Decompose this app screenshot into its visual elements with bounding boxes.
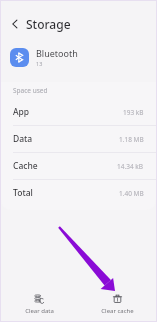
- button[interactable]: Bluetooth: [1, 43, 156, 71]
- staticText: Clear data: [25, 307, 54, 315]
- staticText: 1.18 MB: [119, 135, 144, 144]
- staticText: 1.40 MB: [119, 189, 144, 198]
- staticText: Clear cache: [101, 307, 134, 315]
- staticText: 14.34 kB: [117, 162, 144, 171]
- button[interactable]: Cache: [1, 153, 156, 179]
- staticText: App: [13, 106, 30, 118]
- staticText: Bluetooth: [36, 47, 78, 59]
- button[interactable]: Clear data: [1, 289, 78, 319]
- staticText: Storage: [26, 16, 71, 32]
- staticText: Cache: [13, 160, 38, 172]
- button[interactable]: Total: [1, 180, 156, 206]
- button[interactable]: App: [1, 99, 156, 125]
- button[interactable]: Data: [1, 126, 156, 152]
- button[interactable]: Back: [7, 16, 23, 32]
- staticText: Space used: [13, 86, 48, 95]
- button[interactable]: Clear cache: [78, 289, 156, 319]
- staticText: Data: [13, 133, 33, 145]
- staticText: 193 kB: [123, 108, 144, 117]
- staticText: 13: [36, 60, 43, 67]
- staticText: Total: [13, 187, 33, 199]
